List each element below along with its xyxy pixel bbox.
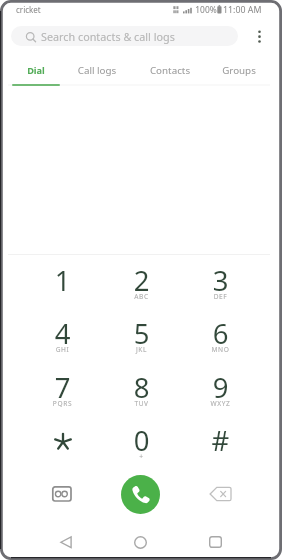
staticText: JKL bbox=[102, 345, 181, 354]
other: star bbox=[53, 432, 73, 452]
staticText: 4 bbox=[23, 315, 102, 352]
staticText: Contacts bbox=[134, 64, 206, 77]
staticText: 5 bbox=[102, 315, 181, 352]
button[interactable]: Back bbox=[46, 522, 86, 560]
button[interactable]: 5 bbox=[102, 308, 181, 362]
button[interactable]: Home bbox=[120, 522, 160, 560]
button[interactable]: Dial bbox=[12, 58, 60, 86]
staticText: GHI bbox=[23, 345, 102, 354]
button[interactable]: 0 bbox=[102, 415, 181, 469]
staticText: 11:00 AM bbox=[223, 4, 269, 16]
button[interactable]: star bbox=[23, 415, 102, 469]
button[interactable]: Call bbox=[121, 475, 160, 514]
button[interactable]: Backspace bbox=[200, 474, 240, 514]
staticText: MNO bbox=[181, 345, 260, 354]
button[interactable]: Recent apps bbox=[195, 522, 235, 560]
button[interactable]: Search contacts & call logs bbox=[11, 26, 238, 46]
staticText: 2 bbox=[102, 262, 181, 299]
staticText: Call logs bbox=[60, 64, 134, 77]
button[interactable]: Voicemail bbox=[41, 474, 81, 514]
staticText: 1 bbox=[23, 262, 102, 299]
staticText: 3 bbox=[181, 262, 260, 299]
button[interactable]: 4 bbox=[23, 308, 102, 362]
staticText: DEF bbox=[181, 292, 260, 301]
button[interactable]: Contacts bbox=[134, 58, 206, 86]
staticText: 7 bbox=[23, 369, 102, 406]
staticText: ABC bbox=[102, 292, 181, 301]
button[interactable]: Call logs bbox=[60, 58, 134, 86]
staticText: + bbox=[102, 452, 181, 461]
staticText: cricket bbox=[16, 4, 76, 15]
button[interactable]: 1 bbox=[23, 255, 102, 309]
staticText: Dial bbox=[12, 64, 60, 77]
staticText: Search contacts & call logs bbox=[41, 29, 175, 44]
button[interactable]: 7 bbox=[23, 362, 102, 416]
button[interactable]: 6 bbox=[181, 308, 260, 362]
button[interactable]: More options bbox=[248, 24, 272, 48]
button[interactable]: 2 bbox=[102, 255, 181, 309]
button[interactable]: 3 bbox=[181, 255, 260, 309]
staticText: 9 bbox=[181, 369, 260, 406]
button[interactable]: 8 bbox=[102, 362, 181, 416]
button[interactable]: 9 bbox=[181, 362, 260, 416]
staticText: Groups bbox=[206, 64, 272, 77]
staticText: TUV bbox=[102, 399, 181, 408]
staticText: PQRS bbox=[23, 399, 102, 408]
staticText: 0 bbox=[102, 422, 181, 459]
staticText: WXYZ bbox=[181, 399, 260, 408]
button[interactable]: # bbox=[181, 415, 260, 469]
staticText: 8 bbox=[102, 369, 181, 406]
staticText: 6 bbox=[181, 315, 260, 352]
button[interactable]: Groups bbox=[206, 58, 272, 86]
staticText: # bbox=[181, 422, 260, 459]
staticText: 100% bbox=[190, 4, 222, 15]
